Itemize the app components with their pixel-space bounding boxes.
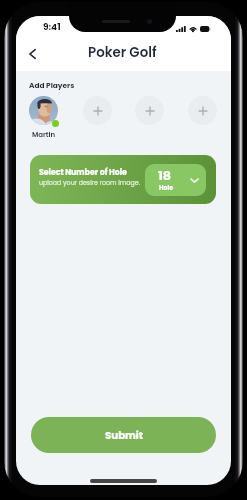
staticText: upload your desire room image.: [39, 178, 140, 187]
button[interactable]: Back: [20, 42, 44, 66]
staticText: Martin: [32, 130, 56, 140]
button[interactable]: Add player: [188, 96, 217, 125]
staticText: Hole: [159, 183, 174, 192]
button[interactable]: Add player: [135, 96, 164, 125]
button[interactable]: Select Number of Hole: [30, 155, 216, 204]
button[interactable]: Submit: [31, 417, 216, 453]
button[interactable]: Martin: [29, 96, 58, 125]
staticText: Add Players: [29, 80, 75, 90]
staticText: Poker Golf: [88, 43, 157, 62]
button[interactable]: 18: [145, 164, 206, 196]
staticText: Select Number of Hole: [39, 167, 127, 178]
staticText: Submit: [105, 428, 143, 442]
staticText: 18: [158, 167, 172, 185]
button[interactable]: Add player: [83, 96, 112, 125]
staticText: 9:41: [43, 21, 61, 34]
